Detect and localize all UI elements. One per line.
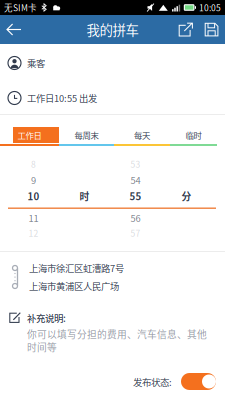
staticText: 8	[31, 158, 36, 170]
staticText: 你可以填写分担的费用、汽车信息、其他	[27, 327, 207, 341]
staticText: 发布状态:	[133, 375, 172, 389]
staticText: 10:05	[199, 1, 221, 14]
staticText: 每天	[134, 129, 150, 141]
staticText: 无SIM卡	[4, 1, 37, 14]
staticText: 10	[27, 189, 39, 203]
button[interactable]: 返回	[0, 15, 28, 44]
staticText: 55	[129, 189, 141, 203]
staticText: 每周末	[74, 129, 98, 141]
button[interactable]: 分享	[173, 15, 199, 44]
staticText: 我的拼车	[86, 20, 138, 39]
button[interactable]: 工作日	[0, 127, 59, 143]
button[interactable]: 保存	[199, 15, 225, 44]
staticText: 56	[130, 211, 140, 225]
staticText: 时	[79, 189, 89, 203]
staticText: 上海市黄浦区人民广场	[29, 279, 119, 293]
staticText: 53	[130, 158, 140, 170]
staticText: 11	[28, 211, 38, 225]
staticText: 补充说明:	[27, 311, 66, 325]
button[interactable]: 临时	[170, 127, 217, 143]
button[interactable]: 工作日10:55 出发	[0, 82, 225, 114]
staticText: 时间等	[27, 340, 57, 354]
staticText: 57	[130, 227, 140, 239]
staticText: 工作日	[17, 129, 41, 141]
staticText: 工作日10:55 出发	[27, 91, 97, 105]
button[interactable]: 每天	[114, 127, 170, 143]
button[interactable]: 上海市黄浦区人民广场	[0, 277, 225, 295]
staticText: 9	[31, 173, 36, 187]
staticText: 54	[130, 173, 140, 187]
staticText: 上海市徐汇区虹漕路7号	[29, 261, 124, 275]
staticText: 分	[181, 189, 191, 203]
button[interactable]: 发布状态	[181, 373, 216, 390]
button[interactable]: 上海市徐汇区虹漕路7号	[0, 259, 225, 277]
staticText: 12	[28, 227, 38, 239]
staticText: 乘客	[27, 56, 45, 70]
button[interactable]: 每周末	[59, 127, 114, 143]
button[interactable]: 乘客	[0, 44, 225, 82]
staticText: 临时	[185, 129, 201, 141]
